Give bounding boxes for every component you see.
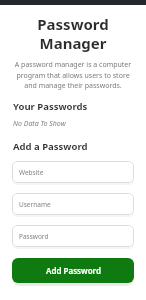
button[interactable]: Password [12,225,134,247]
staticText: No Data To Show [13,119,66,129]
staticText: Username [19,200,51,209]
button[interactable]: Website [12,161,134,183]
staticText: A password manager is a computer program… [13,60,133,90]
staticText: Your Passwords [13,100,88,113]
staticText: Add a Password [13,140,88,153]
staticText: Password Manager [11,14,135,53]
staticText: Password [19,232,49,241]
button[interactable]: Username [12,193,134,215]
button[interactable]: Add Password [12,258,134,283]
staticText: Website [19,168,44,177]
staticText: Add Password [46,265,101,276]
